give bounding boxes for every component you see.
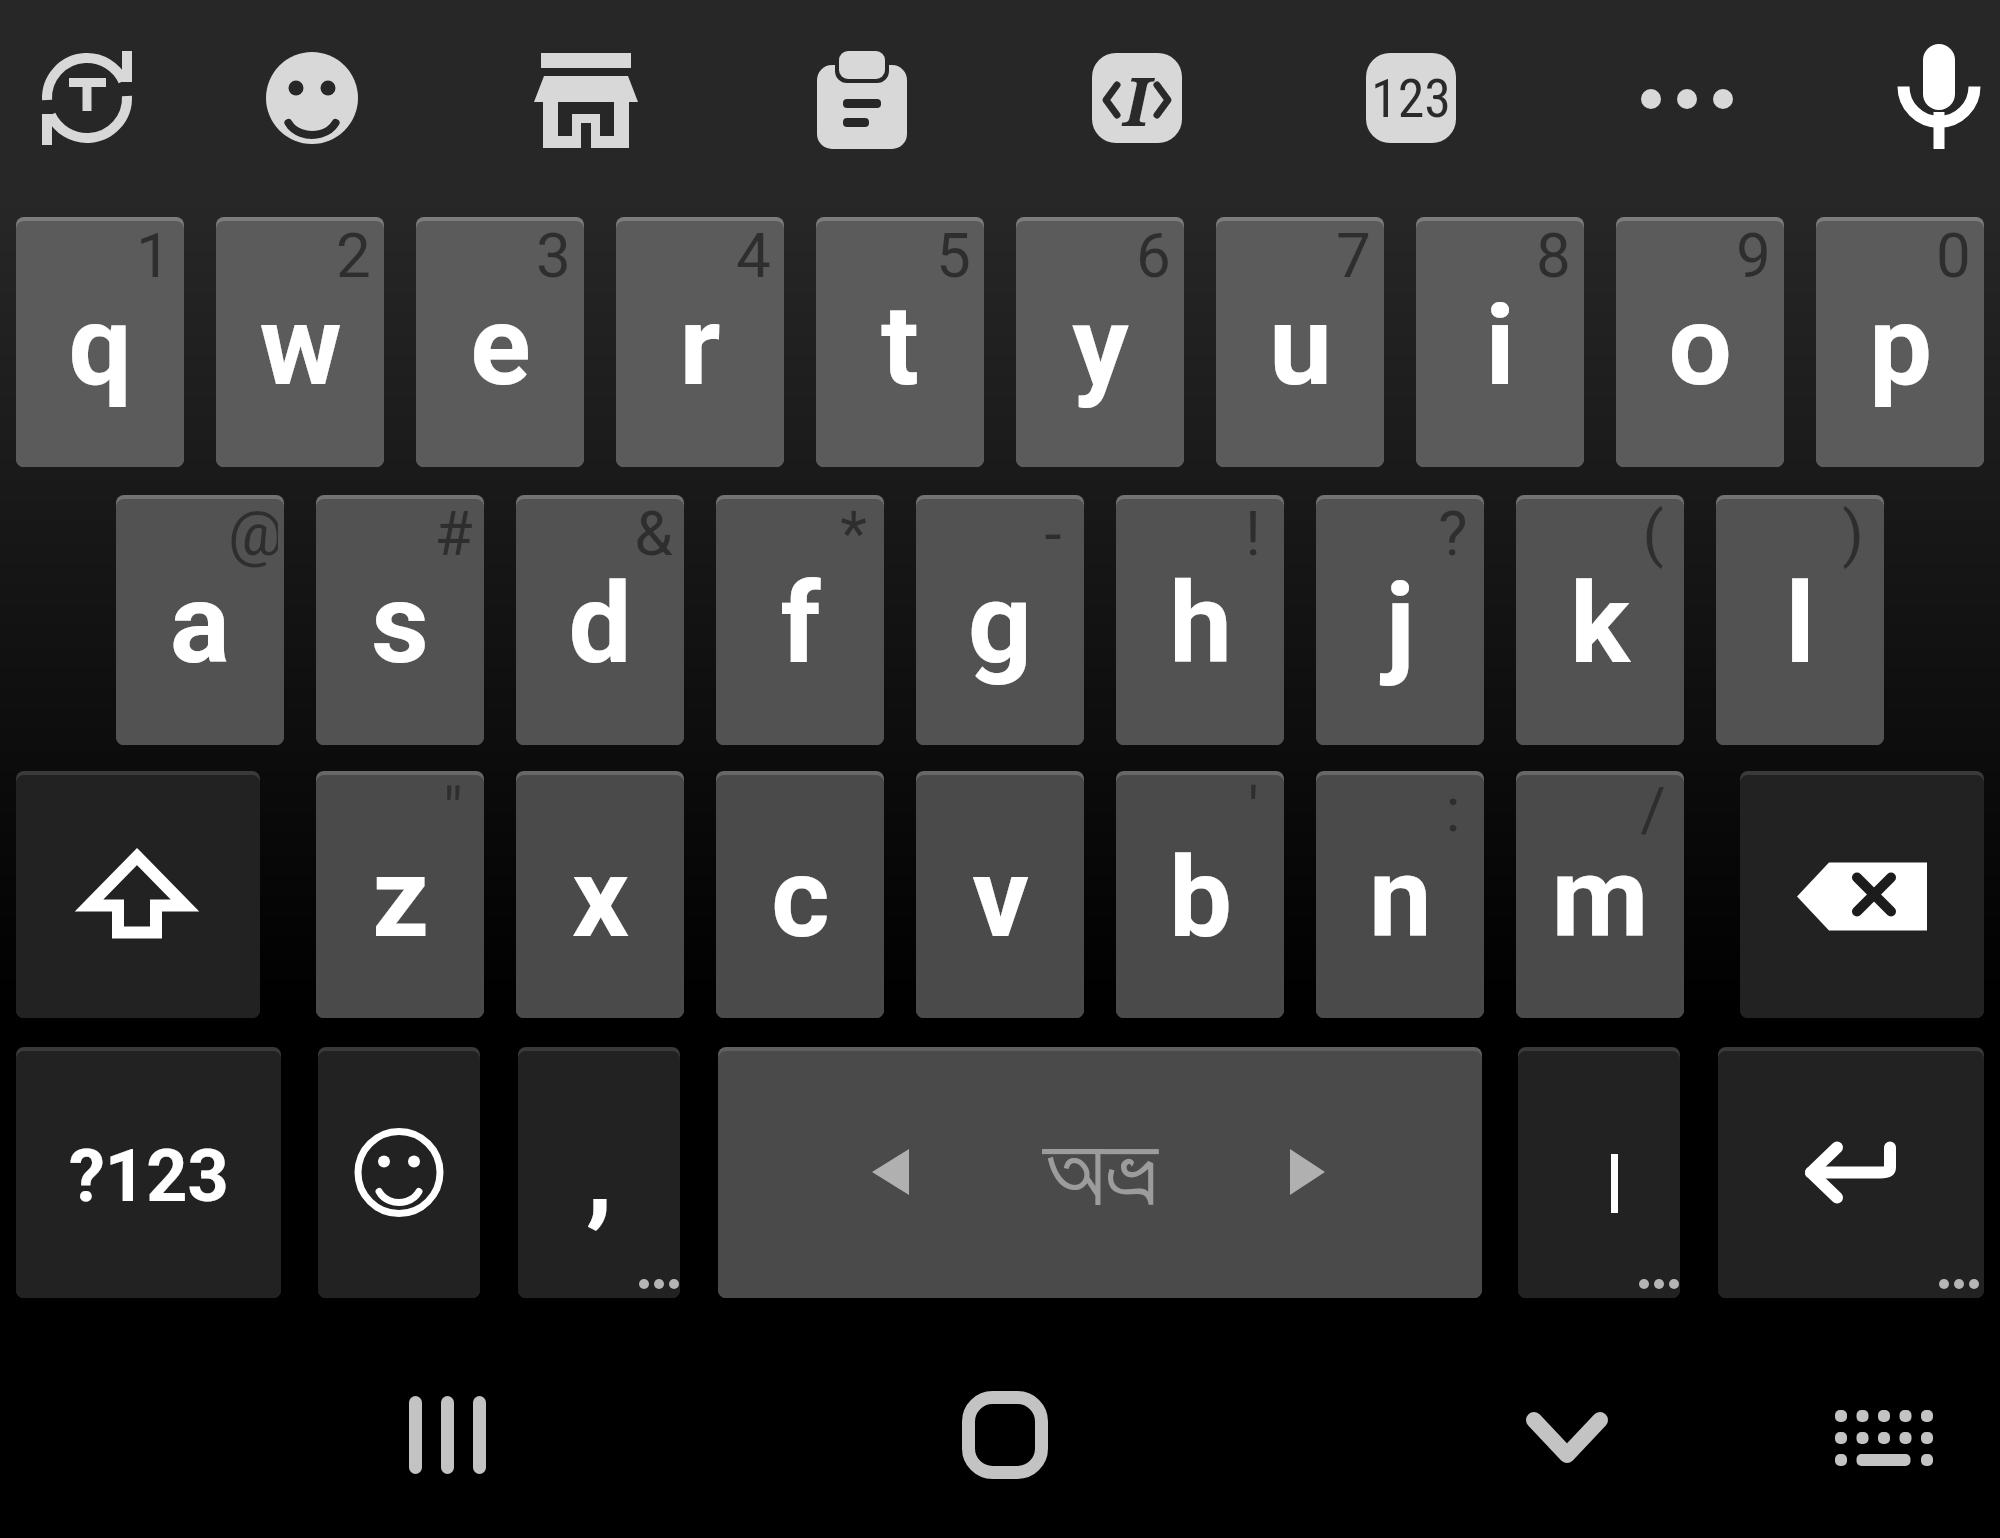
button[interactable]: e bbox=[416, 217, 584, 467]
button[interactable]: p bbox=[1816, 217, 1984, 467]
button[interactable]: a bbox=[116, 495, 284, 745]
button[interactable]: x bbox=[516, 771, 684, 1018]
button[interactable]: l bbox=[1716, 495, 1884, 745]
button[interactable]: Period bbox=[1518, 1047, 1680, 1298]
button[interactable]: Emoji and stickers bbox=[242, 28, 382, 168]
button[interactable]: g bbox=[916, 495, 1084, 745]
button[interactable]: u bbox=[1216, 217, 1384, 467]
button[interactable]: Shift bbox=[16, 771, 260, 1018]
staticText: I bbox=[1123, 53, 1151, 146]
staticText: q bbox=[68, 280, 132, 411]
button[interactable]: t bbox=[816, 217, 984, 467]
staticText: অভ্র bbox=[1043, 1125, 1158, 1225]
staticText: # bbox=[434, 497, 473, 569]
staticText: 5 bbox=[936, 219, 971, 291]
staticText: c bbox=[771, 832, 830, 963]
staticText: t bbox=[881, 280, 919, 411]
button[interactable]: y bbox=[1016, 217, 1184, 467]
staticText: 3 bbox=[536, 219, 571, 291]
staticText: 1 bbox=[136, 219, 171, 291]
button[interactable]: ?123 bbox=[16, 1047, 281, 1298]
staticText: g bbox=[968, 558, 1032, 689]
staticText: l bbox=[1785, 558, 1815, 689]
button[interactable]: Text formatting bbox=[1067, 28, 1207, 168]
staticText: x bbox=[572, 832, 629, 963]
staticText: ( bbox=[1642, 497, 1664, 569]
staticText: n bbox=[1369, 832, 1432, 963]
button[interactable]: s bbox=[316, 495, 484, 745]
staticText: i bbox=[1485, 280, 1515, 411]
button[interactable]: Hide keyboard bbox=[1487, 1365, 1647, 1505]
button[interactable]: r bbox=[616, 217, 784, 467]
staticText: f bbox=[780, 558, 821, 689]
staticText: 0 bbox=[1936, 219, 1971, 291]
button[interactable]: d bbox=[516, 495, 684, 745]
button[interactable]: , bbox=[518, 1047, 680, 1298]
button[interactable]: v bbox=[916, 771, 1084, 1018]
staticText: z bbox=[372, 832, 429, 963]
staticText: d bbox=[568, 558, 632, 689]
button[interactable]: Recent apps bbox=[360, 1365, 520, 1505]
staticText: s bbox=[371, 558, 429, 689]
button[interactable]: Backspace bbox=[1740, 771, 1984, 1018]
button[interactable]: f bbox=[716, 495, 884, 745]
button[interactable]: j bbox=[1316, 495, 1484, 745]
button[interactable]: Home bbox=[925, 1365, 1085, 1505]
button[interactable]: Space bbox=[718, 1047, 1482, 1298]
staticText: & bbox=[634, 497, 673, 569]
staticText: o bbox=[1668, 280, 1732, 411]
staticText: 8 bbox=[1536, 219, 1571, 291]
staticText: b bbox=[1169, 832, 1232, 963]
button[interactable]: Store bbox=[516, 28, 656, 168]
staticText: w bbox=[259, 280, 342, 411]
staticText: j bbox=[1385, 558, 1415, 689]
button[interactable]: h bbox=[1116, 495, 1284, 745]
staticText: ) bbox=[1842, 497, 1864, 569]
staticText: 7 bbox=[1336, 219, 1371, 291]
staticText: @ bbox=[228, 497, 278, 569]
staticText: a bbox=[170, 558, 230, 689]
button[interactable]: m bbox=[1516, 771, 1684, 1018]
staticText: ! bbox=[1245, 497, 1261, 569]
staticText: h bbox=[1169, 558, 1232, 689]
staticText: / bbox=[1640, 773, 1666, 845]
button[interactable]: Clipboard bbox=[792, 28, 932, 168]
staticText: - bbox=[1044, 497, 1062, 569]
staticText: 6 bbox=[1136, 219, 1171, 291]
button[interactable]: Change keyboard bbox=[1805, 1365, 1965, 1505]
button[interactable]: Enter bbox=[1718, 1047, 1984, 1298]
staticText: : bbox=[1445, 773, 1461, 845]
staticText: r bbox=[679, 280, 721, 411]
staticText: ? bbox=[1438, 497, 1468, 569]
staticText: v bbox=[972, 832, 1029, 963]
button[interactable]: q bbox=[16, 217, 184, 467]
staticText: ' bbox=[1248, 773, 1259, 845]
staticText: e bbox=[470, 280, 531, 411]
button[interactable]: z bbox=[316, 771, 484, 1018]
button[interactable]: Emoji keyboard bbox=[318, 1047, 480, 1298]
staticText: y bbox=[1072, 280, 1129, 411]
button[interactable]: n bbox=[1316, 771, 1484, 1018]
button[interactable]: Numbers bbox=[1341, 28, 1481, 168]
staticText: " bbox=[443, 773, 463, 845]
staticText: 2 bbox=[336, 219, 371, 291]
staticText: , bbox=[586, 1112, 613, 1239]
staticText: 4 bbox=[736, 219, 771, 291]
staticText: k bbox=[1570, 558, 1630, 689]
button[interactable]: c bbox=[716, 771, 884, 1018]
staticText: m bbox=[1551, 832, 1649, 963]
staticText: * bbox=[840, 497, 867, 569]
staticText: 9 bbox=[1736, 219, 1771, 291]
button[interactable]: b bbox=[1116, 771, 1284, 1018]
button[interactable]: w bbox=[216, 217, 384, 467]
staticText: p bbox=[1869, 280, 1932, 411]
button[interactable]: Voice input bbox=[1869, 28, 1999, 168]
staticText: u bbox=[1269, 280, 1332, 411]
staticText: 123 bbox=[1371, 67, 1451, 130]
staticText: ?123 bbox=[69, 1134, 229, 1218]
button[interactable]: More options bbox=[1617, 28, 1757, 168]
button[interactable]: Translate bbox=[18, 28, 158, 168]
button[interactable]: o bbox=[1616, 217, 1784, 467]
button[interactable]: k bbox=[1516, 495, 1684, 745]
button[interactable]: i bbox=[1416, 217, 1584, 467]
